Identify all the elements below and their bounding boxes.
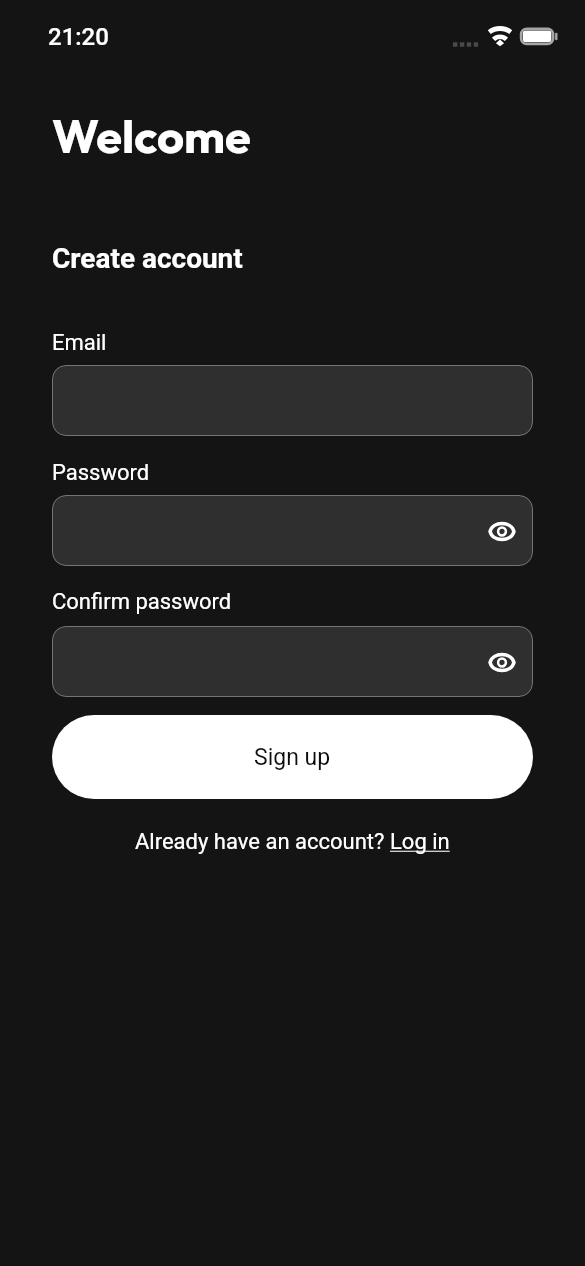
staticText: 21:20: [48, 23, 109, 51]
button[interactable]: Log in: [390, 827, 450, 857]
other: Wi-Fi: [486, 25, 514, 48]
staticText: Email: [52, 330, 107, 356]
staticText: Log in: [390, 829, 450, 855]
button[interactable]: Show password: [478, 507, 526, 555]
staticText: Already have an account?: [135, 829, 390, 855]
staticText: Sign up: [254, 744, 331, 771]
other: Battery full: [518, 25, 559, 48]
button[interactable]: Confirm password: [52, 626, 533, 697]
button[interactable]: Password: [52, 495, 533, 566]
staticText: Create account: [52, 242, 243, 275]
button[interactable]: Email: [52, 365, 533, 436]
staticText: Password: [52, 460, 150, 486]
staticText: Confirm password: [52, 589, 232, 615]
button[interactable]: Show password: [478, 638, 526, 686]
staticText: Welcome: [52, 106, 251, 165]
button[interactable]: Sign up: [52, 715, 533, 799]
